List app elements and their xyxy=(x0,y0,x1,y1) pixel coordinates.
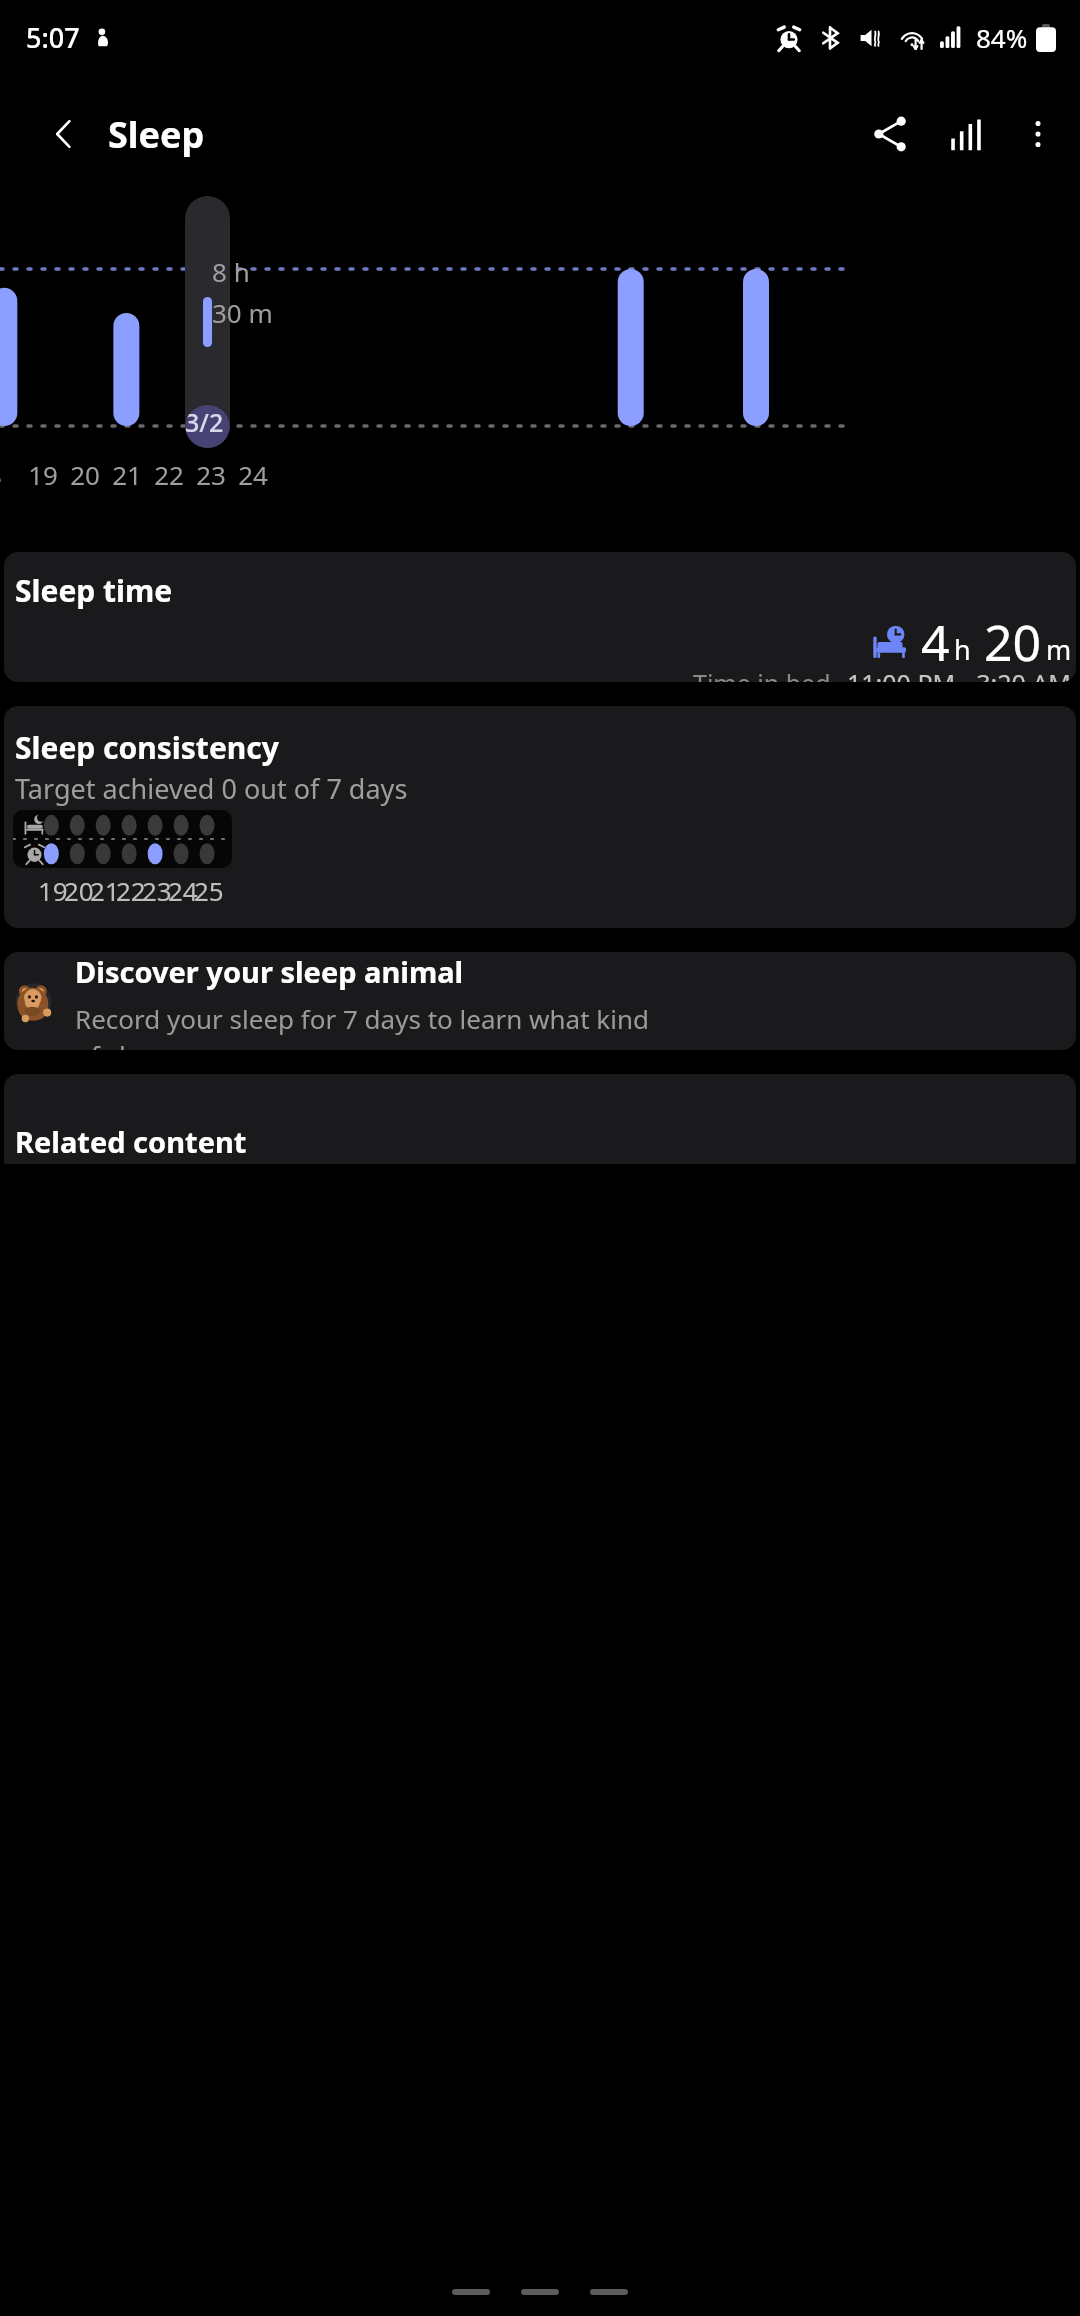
staticText: 20 xyxy=(70,457,100,492)
button[interactable]: Back xyxy=(590,2289,628,2295)
button[interactable]: Discover your sleep animal xyxy=(4,952,1076,1050)
staticText: 20 xyxy=(64,873,94,908)
staticText: 11:00 PM - 3:20 AM xyxy=(847,666,1072,682)
staticText: Record your sleep for 7 days to learn wh… xyxy=(75,1001,649,1050)
button[interactable]: Share xyxy=(852,96,928,172)
staticText: Target achieved 0 out of 7 days xyxy=(15,770,408,807)
staticText: Time in bed xyxy=(693,666,831,682)
staticText: Related content xyxy=(15,1122,247,1161)
button[interactable]: Trends xyxy=(928,96,1004,172)
staticText: 24 xyxy=(168,873,198,908)
staticText: 21 xyxy=(112,457,142,492)
staticText: 20 xyxy=(984,608,1042,676)
staticText: 25 xyxy=(194,873,224,908)
button[interactable]: Sleep consistency xyxy=(4,706,1076,928)
staticText: 8 h xyxy=(212,254,250,289)
staticText: 23 xyxy=(196,457,226,492)
button[interactable]: 3/25 xyxy=(185,196,230,448)
staticText: Sleep consistency xyxy=(15,727,279,768)
staticText: Discover your sleep animal xyxy=(75,952,464,991)
staticText: 21 xyxy=(90,873,120,908)
staticText: 19 xyxy=(38,873,68,908)
staticText: 5:07 xyxy=(26,19,80,56)
staticText: 84% xyxy=(976,20,1028,55)
button[interactable]: Sleep time xyxy=(4,552,1076,682)
button[interactable]: Home xyxy=(521,2289,559,2295)
staticText: 24 xyxy=(238,457,268,492)
staticText: 19 xyxy=(28,457,58,492)
staticText: 3/25 xyxy=(185,405,230,448)
staticText: m xyxy=(1046,631,1072,668)
staticText: 4 xyxy=(921,608,950,676)
button[interactable]: Back xyxy=(36,106,92,162)
button[interactable]: More options xyxy=(1004,96,1072,172)
staticText: 22 xyxy=(154,457,184,492)
staticText: 8 xyxy=(0,457,2,492)
button[interactable]: Recents xyxy=(452,2289,490,2295)
button[interactable]: Related content xyxy=(4,1074,1076,1164)
staticText: Sleep xyxy=(108,110,205,159)
staticText: 22 xyxy=(116,873,146,908)
staticText: 23 xyxy=(142,873,172,908)
staticText: 30 m xyxy=(212,295,273,330)
staticText: Sleep time xyxy=(15,570,173,611)
staticText: h xyxy=(954,631,971,668)
